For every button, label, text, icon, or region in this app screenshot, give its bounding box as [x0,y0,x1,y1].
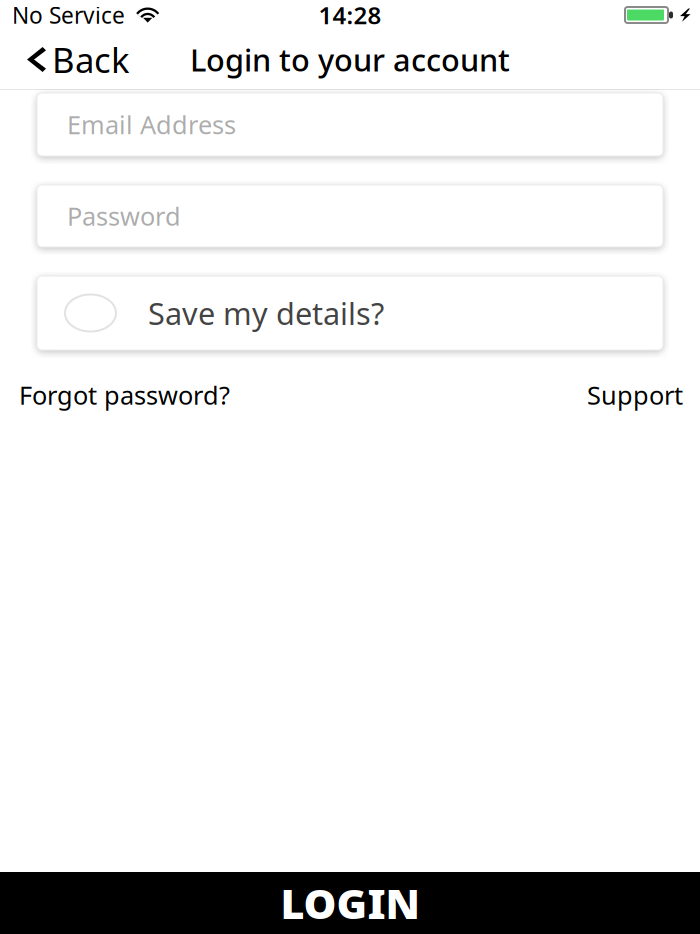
button[interactable]: Email Address [37,93,663,156]
staticText: LOGIN [280,876,419,930]
staticText: Login to your account [190,39,510,80]
staticText: Email Address [67,108,236,141]
button[interactable]: Support [587,378,683,412]
staticText: No Service [12,0,125,30]
button[interactable]: LOGIN [0,872,700,934]
staticText: Back [52,36,130,82]
staticText: Forgot password? [19,378,230,412]
staticText: Save my details? [148,293,384,333]
staticText: Password [67,199,181,233]
button[interactable]: Back [0,32,142,87]
staticText: 14:28 [318,0,381,31]
button[interactable]: Forgot password? [19,378,230,412]
button[interactable]: Password [37,185,663,247]
button[interactable]: Save my details? [37,276,663,350]
staticText: Support [587,378,683,412]
